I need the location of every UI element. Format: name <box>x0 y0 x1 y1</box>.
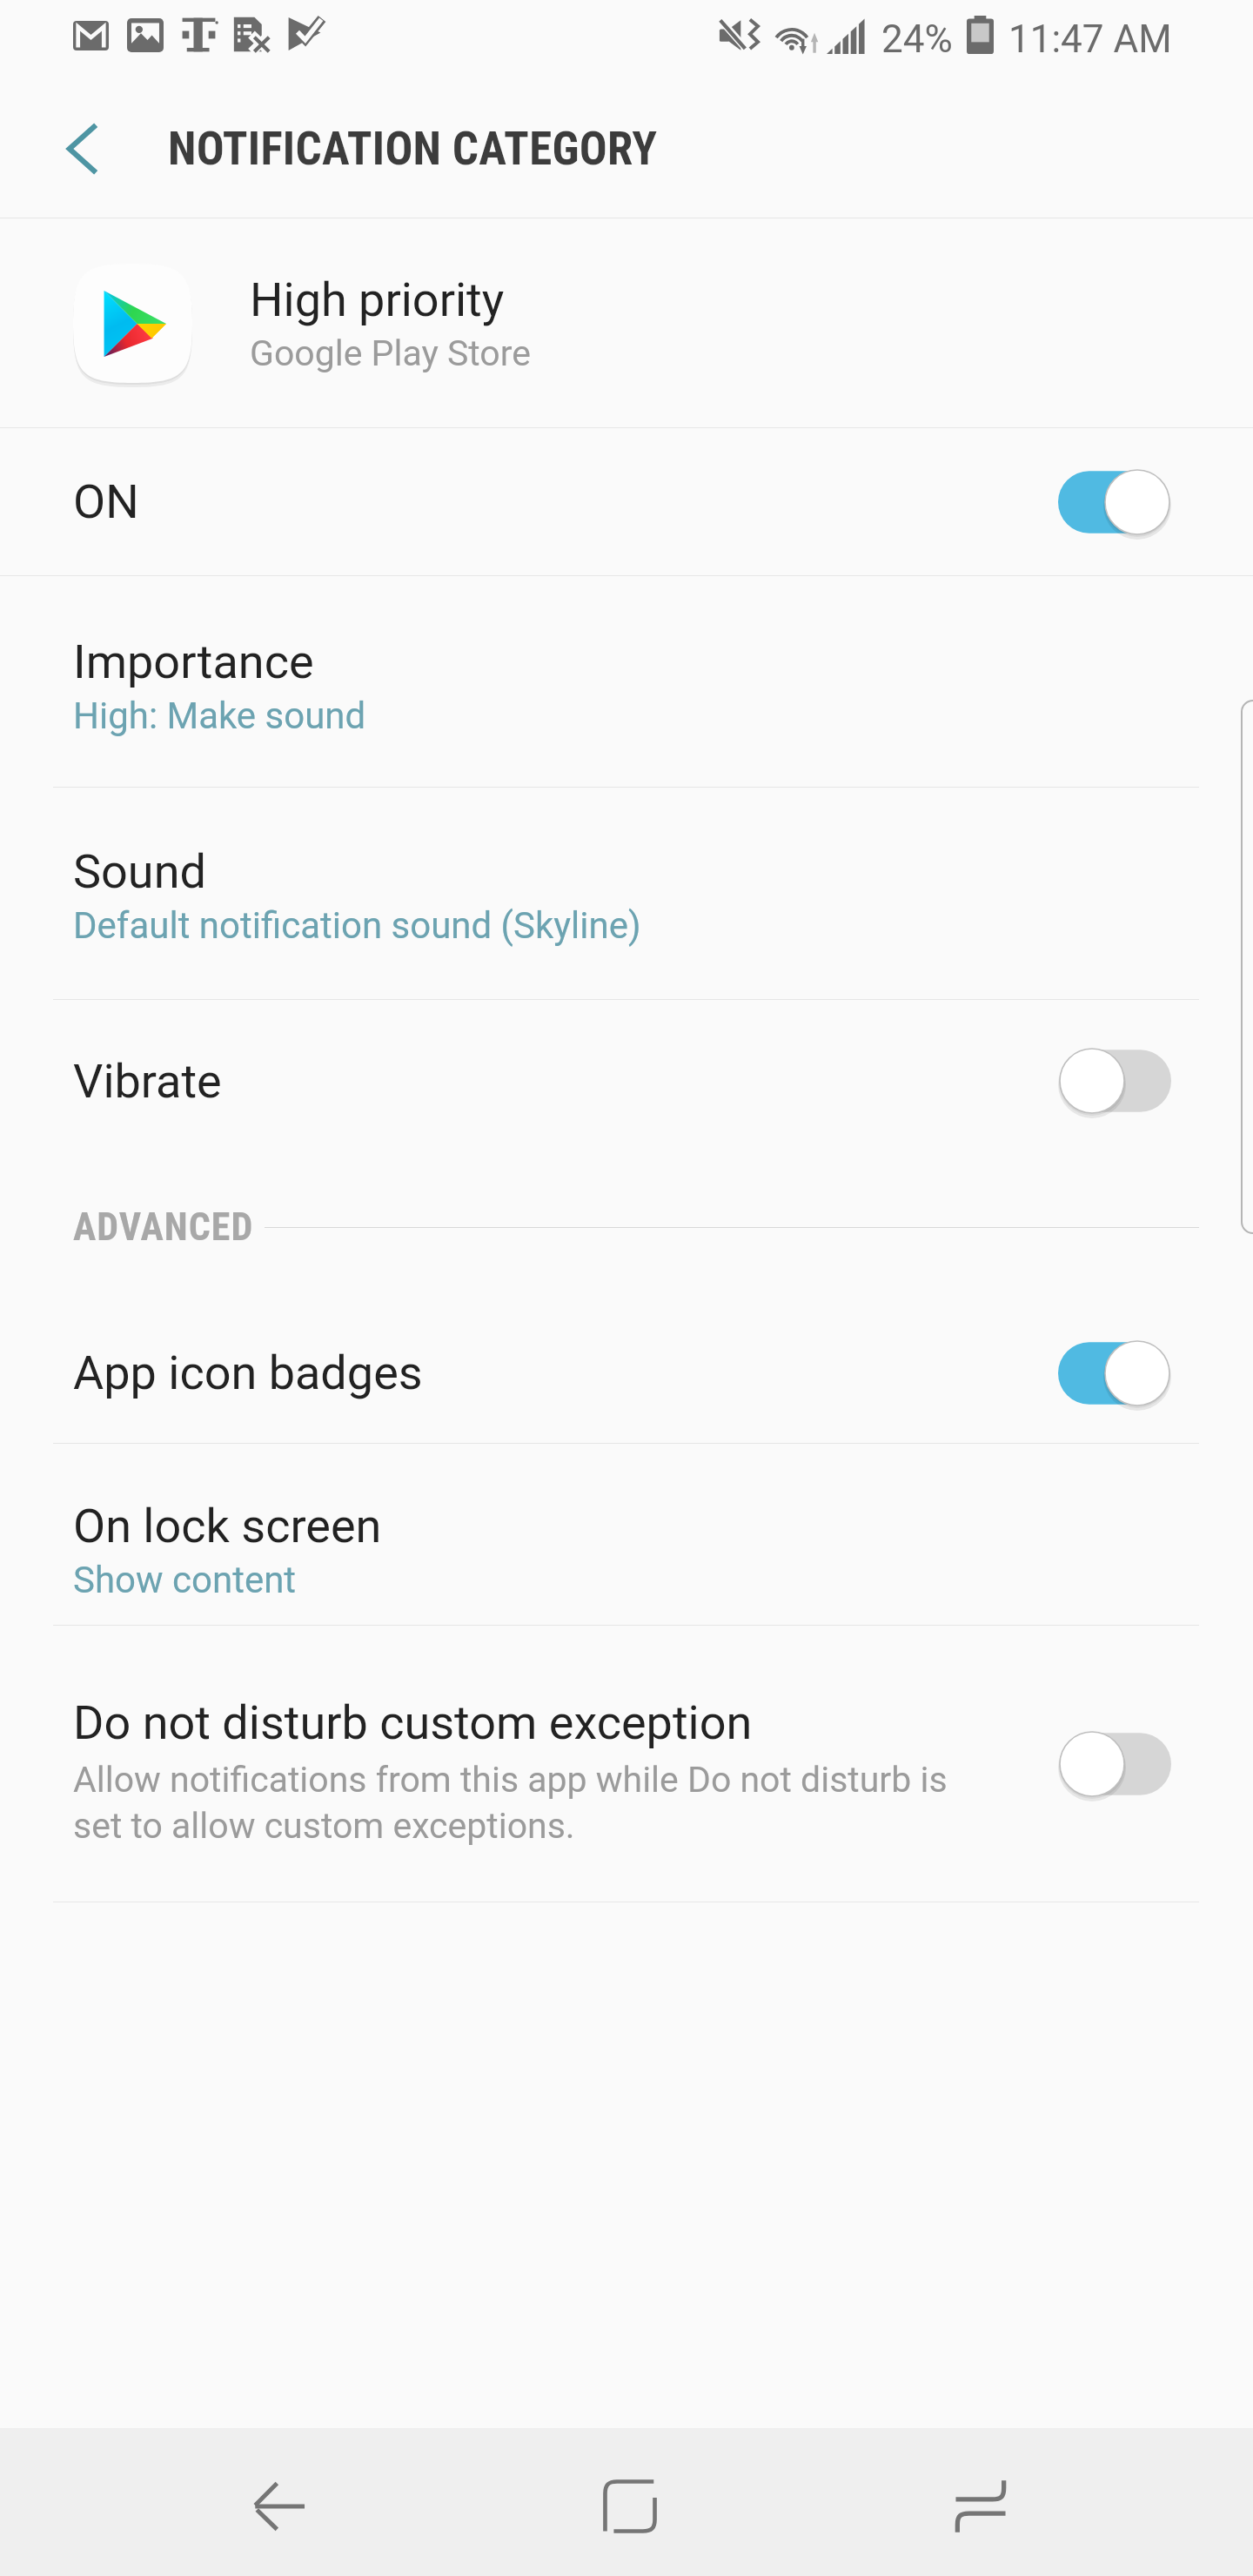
button[interactable]: Do not disturb custom exception <box>0 1626 1253 1902</box>
staticText: Google Play Store <box>250 332 531 374</box>
staticText: ADVANCED <box>73 1204 254 1250</box>
staticText: Show content <box>73 1559 297 1601</box>
staticText: Do not disturb custom exception <box>73 1695 753 1750</box>
staticText: App icon badges <box>73 1345 423 1400</box>
staticText: 11:47 AM <box>1008 17 1172 62</box>
button[interactable]: Navigate up <box>41 107 124 191</box>
staticText: Allow notifications from this app while … <box>73 1759 983 1847</box>
staticText: High: Make sound <box>73 694 366 737</box>
button[interactable]: Recent apps <box>894 2428 1068 2576</box>
staticText: High priority <box>250 272 505 327</box>
staticText: Sound <box>73 844 206 899</box>
staticText: Vibrate <box>73 1054 222 1109</box>
button[interactable]: Home <box>543 2428 717 2576</box>
button[interactable]: Vibrate <box>0 1000 1253 1162</box>
button[interactable]: Back <box>192 2428 366 2576</box>
staticText: NOTIFICATION CATEGORY <box>168 122 658 176</box>
staticText: 24% <box>881 17 953 62</box>
button[interactable]: High priority <box>0 218 1253 427</box>
button[interactable]: ON <box>0 428 1253 575</box>
button[interactable]: On lock screen <box>0 1444 1253 1625</box>
staticText: On lock screen <box>73 1499 382 1553</box>
button[interactable]: App icon badges <box>0 1303 1253 1443</box>
staticText: Default notification sound (Skyline) <box>73 904 641 947</box>
button[interactable]: Sound <box>0 788 1253 999</box>
button[interactable]: Importance <box>0 576 1253 787</box>
staticText: Importance <box>73 634 314 689</box>
staticText: ON <box>73 474 139 529</box>
